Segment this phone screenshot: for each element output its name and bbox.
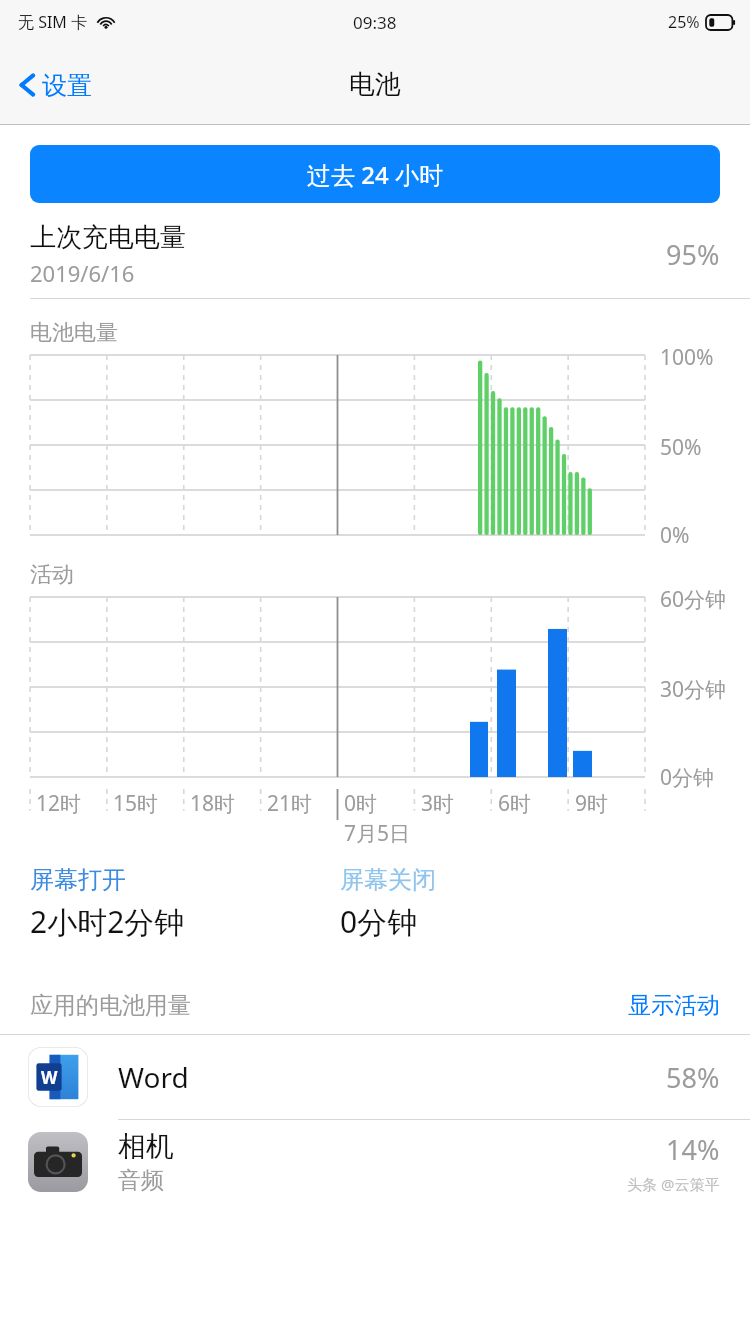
staticText: 电池电量 bbox=[30, 319, 118, 347]
staticText: 18时 bbox=[190, 789, 236, 818]
staticText: 09:38 bbox=[353, 11, 397, 34]
staticText: 相机 bbox=[118, 1129, 174, 1164]
staticText: 0分钟 bbox=[660, 763, 715, 792]
staticText: Word bbox=[118, 1058, 666, 1096]
staticText: 头条 @云策平 bbox=[627, 1174, 720, 1194]
staticText: 58% bbox=[666, 1059, 720, 1096]
staticText: 显示活动 bbox=[628, 991, 720, 1020]
staticText: 应用的电池用量 bbox=[30, 991, 628, 1020]
staticText: 100% bbox=[660, 343, 714, 372]
staticText: 14% bbox=[666, 1131, 720, 1168]
staticText: 6时 bbox=[498, 789, 532, 818]
staticText: 屏幕关闭 bbox=[340, 865, 436, 895]
staticText: 活动 bbox=[30, 561, 74, 589]
staticText: 0分钟 bbox=[340, 901, 418, 942]
staticText: 95% bbox=[666, 236, 720, 273]
staticText: 30分钟 bbox=[660, 675, 727, 704]
staticText: 9时 bbox=[575, 789, 609, 818]
staticText: 50% bbox=[660, 433, 702, 462]
staticText: 2小时2分钟 bbox=[30, 901, 185, 942]
staticText: 21时 bbox=[267, 789, 313, 818]
button[interactable]: W bbox=[0, 1035, 750, 1119]
staticText: 15时 bbox=[113, 789, 159, 818]
staticText: 屏幕打开 bbox=[30, 865, 126, 895]
staticText: 2019/6/16 bbox=[30, 258, 135, 288]
staticText: 过去 24 小时 bbox=[307, 158, 443, 191]
staticText: 7月5日 bbox=[344, 819, 411, 848]
staticText: 25% bbox=[668, 11, 700, 33]
staticText: W bbox=[41, 1066, 58, 1089]
staticText: 12时 bbox=[36, 789, 82, 818]
staticText: 0时 bbox=[344, 789, 378, 818]
staticText: 60分钟 bbox=[660, 585, 727, 614]
staticText: 3时 bbox=[421, 789, 455, 818]
button[interactable]: 相机 bbox=[0, 1120, 750, 1204]
button[interactable]: 过去 24 小时 bbox=[30, 145, 720, 203]
staticText: 上次充电电量 bbox=[30, 221, 186, 254]
button[interactable]: 设置 bbox=[16, 68, 100, 102]
staticText: 设置 bbox=[42, 70, 92, 101]
staticText: 无 SIM 卡 bbox=[18, 11, 88, 33]
staticText: 0% bbox=[660, 521, 690, 550]
staticText: 音频 bbox=[118, 1166, 164, 1195]
staticText: 电池 bbox=[349, 68, 401, 101]
button[interactable]: 显示活动 bbox=[628, 991, 720, 1020]
